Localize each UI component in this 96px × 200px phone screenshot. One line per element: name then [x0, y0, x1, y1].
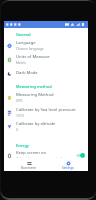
- staticText: 0: [16, 127, 18, 132]
- staticText: Language: [16, 40, 36, 46]
- staticText: Metric: [16, 60, 27, 65]
- staticText: 1013: [16, 113, 24, 118]
- staticText: Energy: [16, 143, 29, 148]
- staticText: GPS: [16, 98, 23, 103]
- button[interactable]: Language: [4, 38, 88, 52]
- button[interactable]: Units of Measure: [4, 52, 88, 66]
- staticText: Barometer: [21, 166, 37, 170]
- staticText: Measuring method: [16, 84, 52, 89]
- staticText: Automatic, pause on inactivity: [16, 156, 64, 161]
- button[interactable]: Calibrate by altitude: [4, 119, 88, 133]
- staticText: Dark Mode: [16, 70, 38, 76]
- staticText: Calibrate by Sea level pressure: [16, 107, 76, 113]
- button[interactable]: Calibrate by Sea level pressure: [4, 105, 88, 119]
- button[interactable]: Keep screen on: [4, 148, 88, 162]
- staticText: Keep screen on: [16, 150, 47, 156]
- button[interactable]: Measuring Method: [4, 90, 88, 104]
- staticText: Calibrate by altitude: [16, 121, 56, 127]
- staticText: Units of Measure: [16, 54, 50, 60]
- staticText: General: [16, 32, 31, 37]
- button[interactable]: Settings: [59, 161, 77, 170]
- button[interactable]: Dark Mode: [4, 66, 88, 80]
- staticText: Choose language: [16, 46, 44, 51]
- button[interactable]: Keep screen on toggle: [76, 152, 85, 159]
- staticText: Settings: [62, 166, 74, 170]
- staticText: Measuring Method: [16, 92, 54, 98]
- button[interactable]: Barometer: [20, 161, 38, 170]
